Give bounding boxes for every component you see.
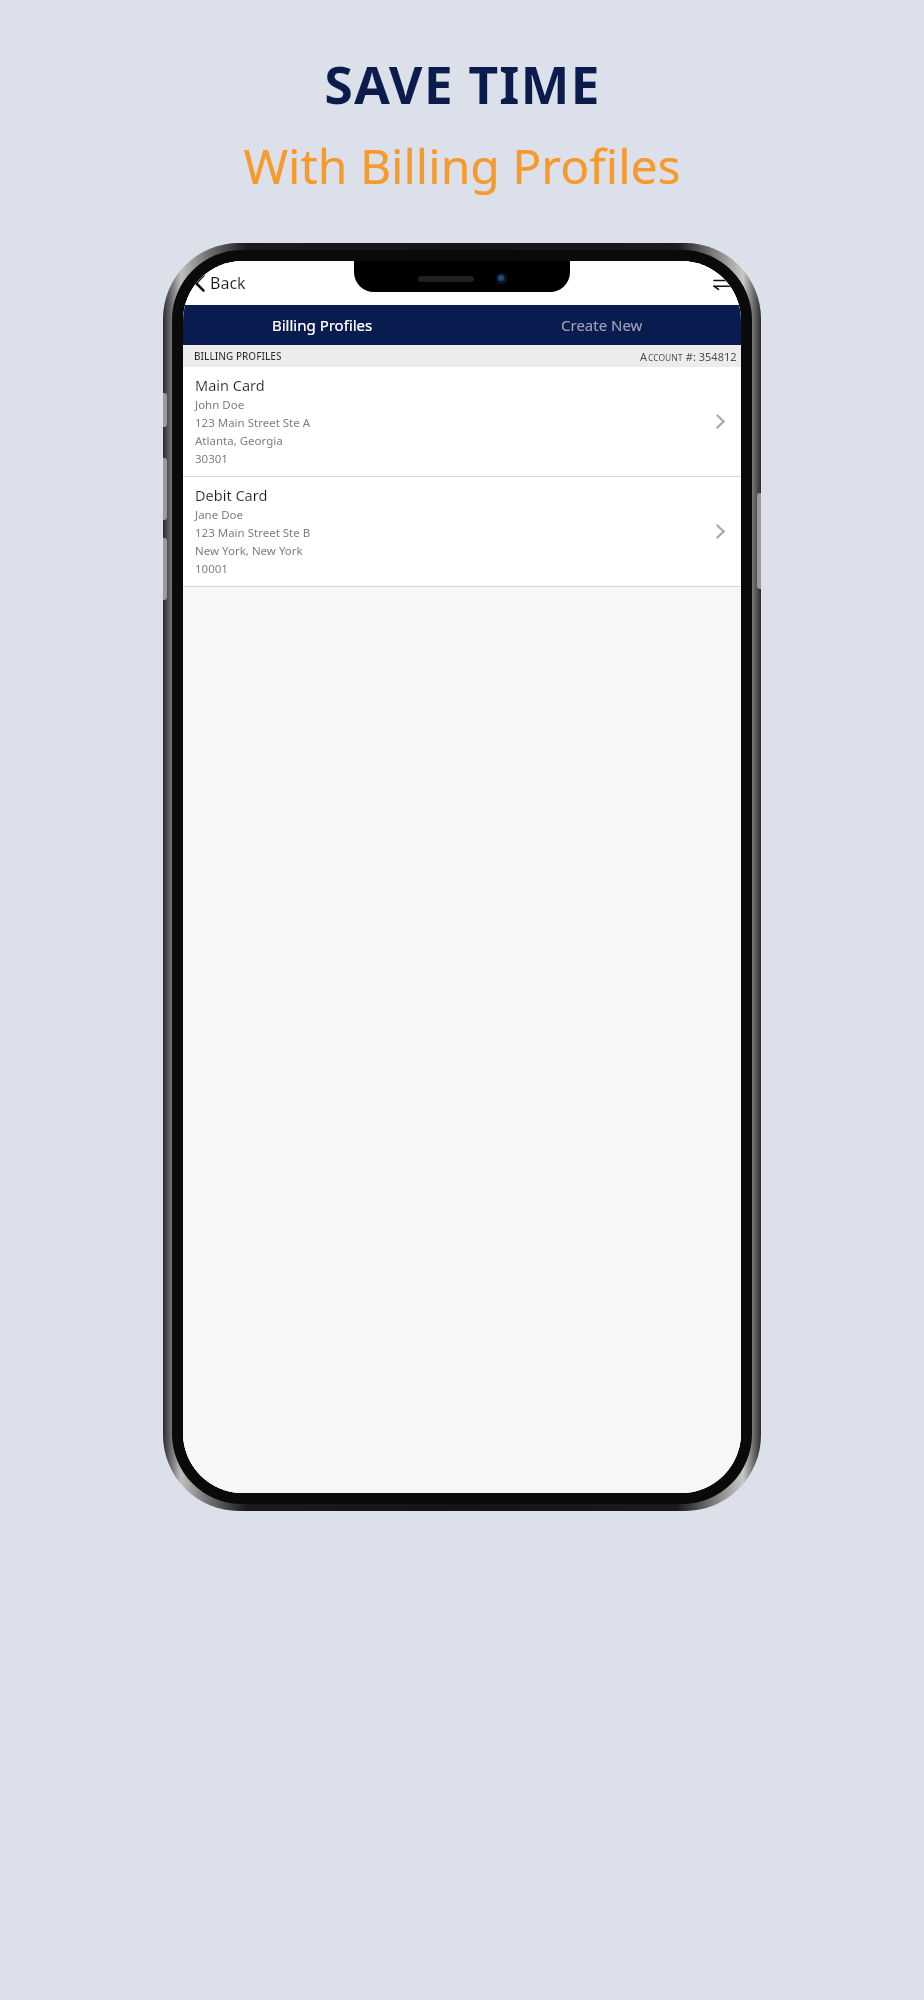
staticText: Main Card bbox=[195, 375, 265, 395]
staticText: 10001 bbox=[195, 561, 228, 577]
staticText: New York, New York bbox=[195, 543, 303, 559]
staticText: 123 Main Street Ste A bbox=[195, 415, 311, 431]
staticText: SAVE TIME bbox=[324, 48, 601, 119]
staticText: John Doe bbox=[195, 397, 245, 413]
staticText: CCOUNT bbox=[648, 352, 683, 364]
button[interactable]: Main Card bbox=[183, 367, 741, 476]
staticText: BILLING PROFILES bbox=[194, 349, 282, 363]
staticText: With Billing Profiles bbox=[243, 133, 681, 198]
staticText: 30301 bbox=[195, 451, 228, 467]
staticText: Atlanta, Georgia bbox=[195, 433, 283, 449]
staticText: 123 Main Street Ste B bbox=[195, 525, 311, 541]
button[interactable]: Create New bbox=[462, 305, 741, 345]
staticText: Back bbox=[210, 272, 246, 294]
staticText: A bbox=[640, 349, 648, 364]
button[interactable]: Debit Card bbox=[183, 477, 741, 586]
staticText: Jane Doe bbox=[195, 507, 244, 523]
button[interactable]: Transfer bbox=[707, 268, 737, 298]
button[interactable]: Billing Profiles bbox=[183, 305, 462, 345]
staticText: Create New bbox=[561, 315, 643, 335]
staticText: #: 354812 bbox=[683, 349, 737, 364]
staticText: Debit Card bbox=[195, 485, 268, 505]
button[interactable]: Back bbox=[189, 268, 252, 298]
staticText: Billing Profiles bbox=[272, 315, 373, 335]
